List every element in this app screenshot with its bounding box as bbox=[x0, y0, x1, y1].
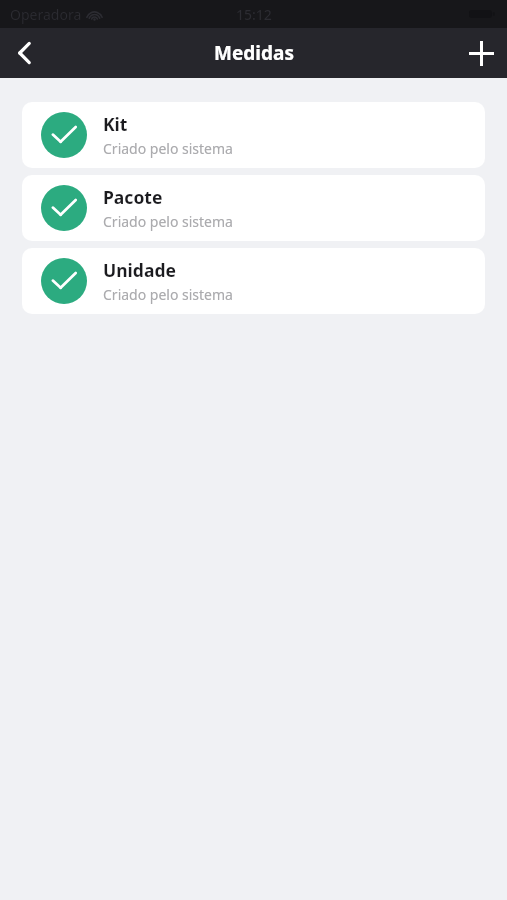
staticText: Criado pelo sistema bbox=[103, 139, 233, 158]
staticText: Kit bbox=[103, 112, 128, 136]
staticText: Operadora bbox=[10, 5, 82, 24]
staticText: Criado pelo sistema bbox=[103, 212, 233, 231]
button[interactable]: Pacote bbox=[22, 175, 485, 241]
button[interactable]: Back bbox=[0, 28, 48, 78]
staticText: Pacote bbox=[103, 185, 163, 209]
button[interactable]: Unidade bbox=[22, 248, 485, 314]
staticText: Criado pelo sistema bbox=[103, 285, 233, 304]
staticText: Medidas bbox=[214, 40, 294, 66]
staticText: Unidade bbox=[103, 258, 176, 282]
button[interactable]: Kit bbox=[22, 102, 485, 168]
staticText: 15:12 bbox=[236, 5, 272, 24]
button[interactable]: Add bbox=[455, 28, 507, 78]
